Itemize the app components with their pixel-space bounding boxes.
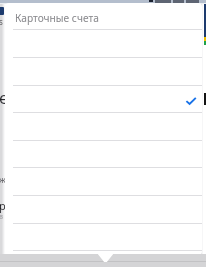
staticText: e	[0, 86, 4, 109]
button[interactable]	[5, 85, 202, 113]
button[interactable]	[5, 195, 202, 223]
button[interactable]	[5, 140, 202, 168]
button[interactable]	[5, 57, 202, 85]
button[interactable]	[5, 112, 202, 140]
button[interactable]	[5, 223, 202, 251]
button[interactable]	[5, 167, 202, 195]
staticText: p	[0, 198, 4, 213]
other: Selected	[186, 97, 196, 105]
staticText: ж	[0, 173, 4, 185]
staticText: s	[0, 16, 3, 27]
staticText: Карточные счета	[15, 11, 99, 25]
staticText: в	[0, 212, 3, 222]
button[interactable]	[5, 250, 202, 255]
button[interactable]	[5, 29, 202, 57]
